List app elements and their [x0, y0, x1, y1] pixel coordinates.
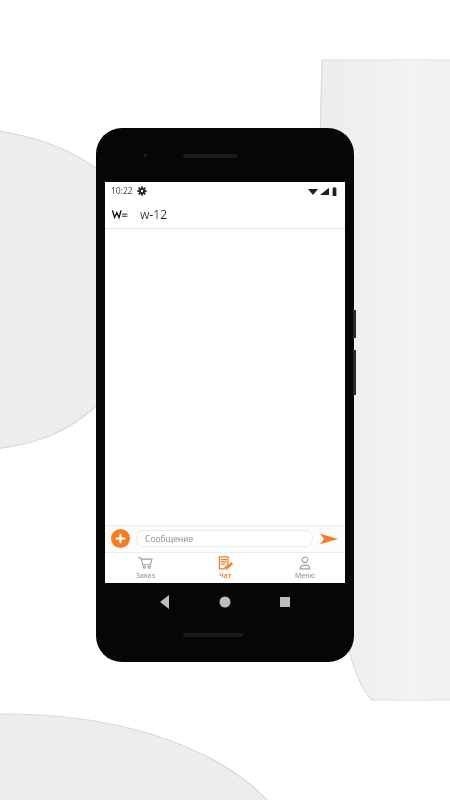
staticText: Заказ [136, 571, 155, 581]
button[interactable]: Меню [265, 553, 345, 583]
button[interactable]: Заказ [105, 553, 185, 583]
button[interactable]: Сообщение [136, 530, 313, 547]
staticText: Чат [219, 571, 232, 581]
staticText: Сообщение [145, 533, 194, 545]
button[interactable]: Отправить [319, 530, 339, 548]
staticText: Меню [295, 571, 316, 581]
button[interactable]: Чат [185, 553, 265, 583]
staticText: 10:22 [111, 185, 133, 197]
staticText: w-12 [140, 206, 168, 222]
button[interactable]: Добавить вложение [111, 529, 130, 548]
